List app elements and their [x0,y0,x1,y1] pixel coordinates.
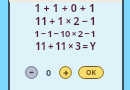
staticText: 0 [46,66,52,78]
staticText: OK [86,68,96,77]
button[interactable]: Decrease [25,66,38,79]
staticText: 11 + 11 × 3 = Y [35,40,96,53]
staticText: 11 + 1 × 2 − 1 [35,14,96,28]
button[interactable]: OK [78,66,104,79]
staticText: 1 − 1 − 10 × 2 − 1 [34,27,96,40]
staticText: 1 + 1 + 0 + 1 [34,1,96,16]
button[interactable]: Increase [59,66,72,79]
